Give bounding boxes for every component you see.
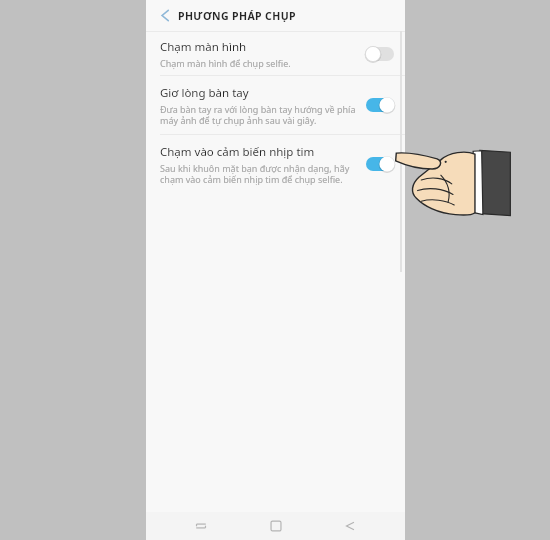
button[interactable]: Chạm màn hình — [146, 32, 405, 75]
button[interactable]: Toggle on — [365, 94, 395, 116]
staticText: PHƯƠNG PHÁP CHỤP — [178, 9, 296, 23]
button[interactable]: Toggle on — [365, 153, 395, 175]
button[interactable]: Back — [330, 512, 370, 540]
staticText: Sau khi khuôn mặt bạn được nhận dạng, hã… — [160, 162, 350, 185]
staticText: Đưa bàn tay ra với lòng bàn tay hướng về… — [160, 103, 356, 126]
staticText: Chạm màn hình — [160, 39, 247, 55]
staticText: Giơ lòng bàn tay — [160, 85, 249, 101]
button[interactable]: Back — [150, 0, 176, 31]
button[interactable]: Toggle off — [365, 43, 395, 65]
staticText: Chạm vào cảm biến nhịp tim — [160, 144, 315, 160]
button[interactable]: Home — [256, 512, 296, 540]
button[interactable]: Giơ lòng bàn tay — [146, 76, 405, 134]
button[interactable]: Recents — [181, 512, 221, 540]
staticText: Chạm màn hình để chụp selfie. — [160, 57, 291, 69]
button[interactable]: Chạm vào cảm biến nhịp tim — [146, 135, 405, 193]
